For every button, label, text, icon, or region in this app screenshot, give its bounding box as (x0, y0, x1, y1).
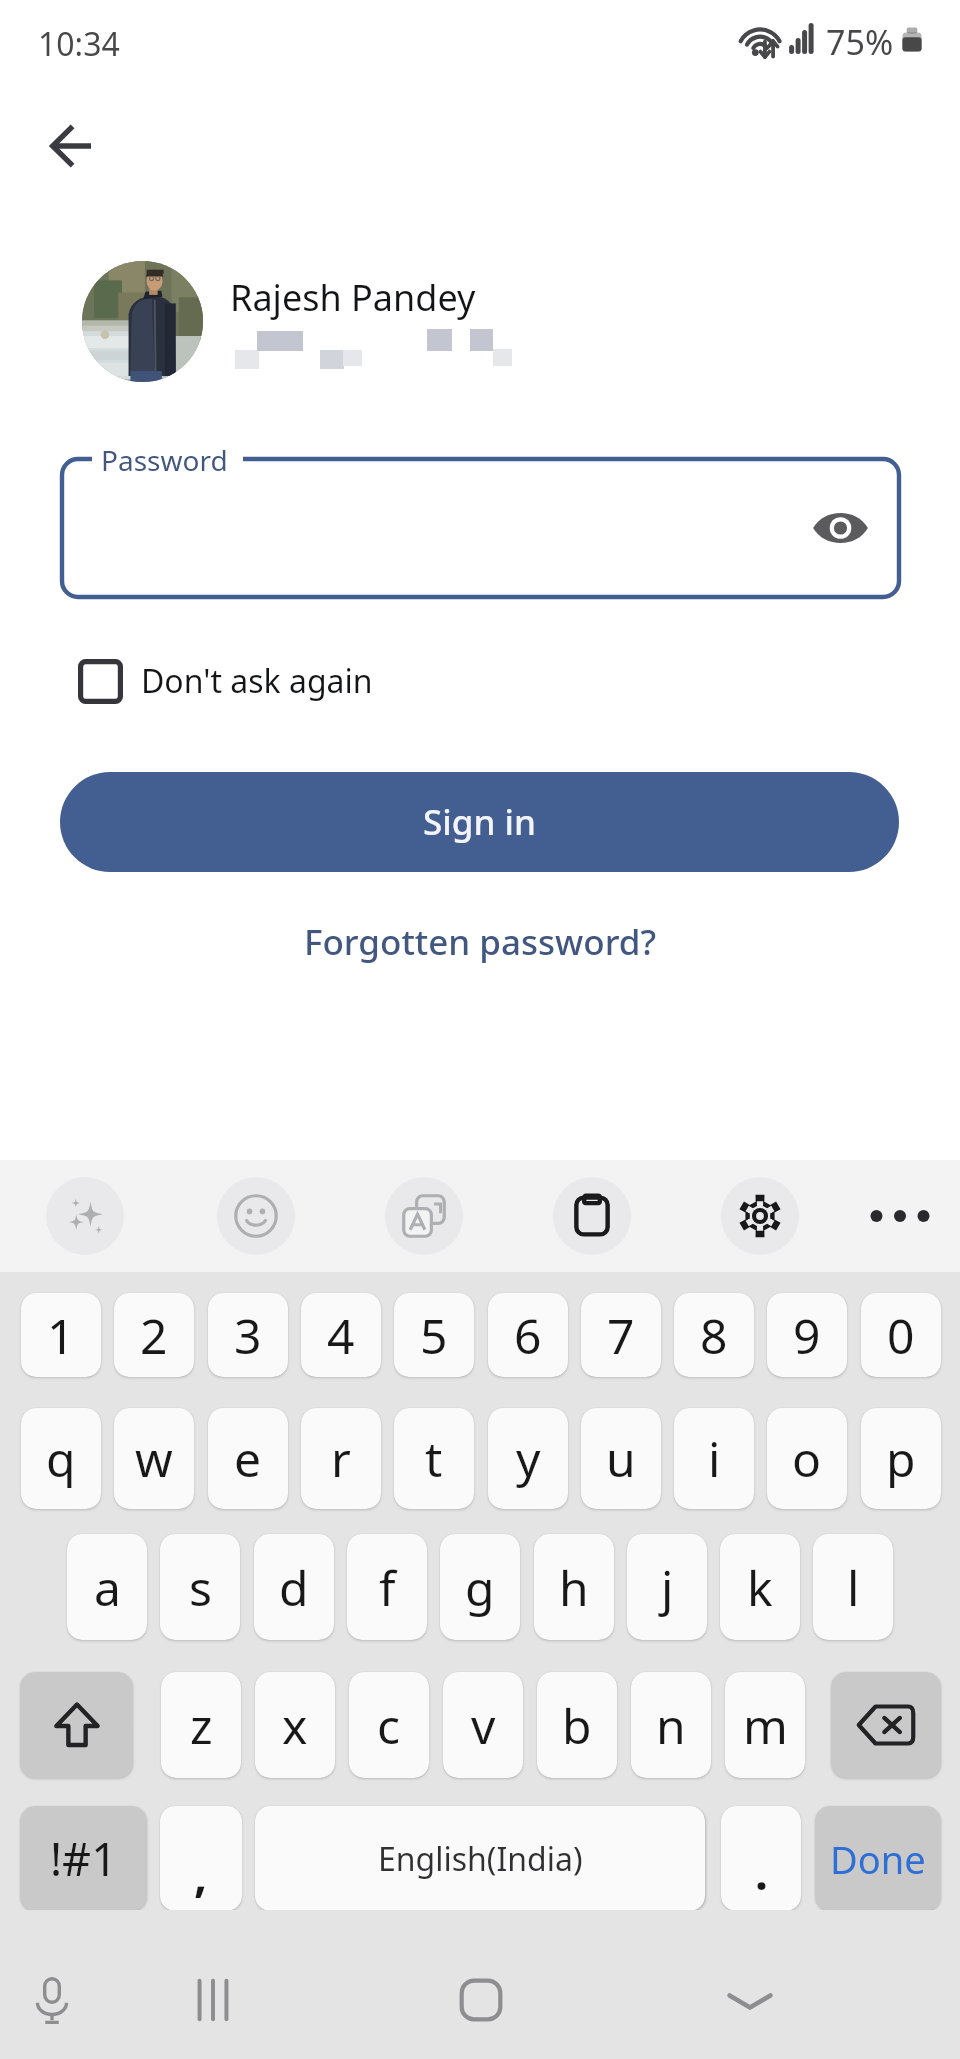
staticText: 2 (140, 1303, 168, 1368)
staticText: i (708, 1426, 721, 1491)
staticText: h (559, 1555, 589, 1620)
button[interactable]: w (114, 1408, 194, 1509)
staticText: 5 (420, 1303, 448, 1368)
button[interactable]: x (255, 1672, 335, 1778)
staticText: x (282, 1693, 308, 1758)
button[interactable]: . (721, 1806, 801, 1911)
staticText: y (516, 1426, 541, 1491)
staticText: u (606, 1426, 636, 1491)
staticText: 4 (327, 1303, 355, 1368)
button[interactable]: u (581, 1408, 661, 1509)
staticText: s (189, 1555, 212, 1620)
staticText: 1 (47, 1303, 75, 1368)
staticText: l (847, 1555, 860, 1620)
staticText: k (747, 1555, 773, 1620)
staticText: English(India) (378, 1837, 583, 1881)
button[interactable]: Backspace (831, 1672, 941, 1778)
button[interactable]: 2 (114, 1293, 194, 1377)
staticText: Rajesh Pandey (230, 273, 476, 322)
button[interactable]: , (160, 1806, 242, 1911)
button[interactable]: 3 (208, 1293, 288, 1377)
button[interactable]: Hide keyboard (710, 1960, 790, 2040)
staticText: p (886, 1426, 916, 1491)
button[interactable]: More options (861, 1177, 939, 1255)
button[interactable]: Settings (721, 1177, 799, 1255)
button[interactable]: h (534, 1534, 614, 1640)
button[interactable]: n (631, 1672, 711, 1778)
button[interactable]: Home (441, 1960, 521, 2040)
staticText: b (562, 1693, 592, 1758)
staticText: m (743, 1693, 788, 1758)
staticText: 8 (700, 1303, 728, 1368)
button[interactable]: 6 (488, 1293, 568, 1377)
button[interactable]: q (21, 1408, 101, 1509)
staticText: a (94, 1555, 121, 1620)
button[interactable]: 4 (301, 1293, 381, 1377)
button[interactable]: f (347, 1534, 427, 1640)
button[interactable]: r (301, 1408, 381, 1509)
button[interactable]: d (254, 1534, 334, 1640)
button[interactable]: Done (815, 1806, 941, 1911)
button[interactable]: t (394, 1408, 474, 1509)
staticText: w (135, 1426, 173, 1491)
button[interactable]: Forgotten password? (284, 906, 677, 978)
button[interactable]: y (488, 1408, 568, 1509)
button[interactable]: 0 (861, 1293, 941, 1377)
button[interactable]: c (349, 1672, 429, 1778)
button[interactable]: s (160, 1534, 240, 1640)
staticText: 75% (826, 19, 894, 65)
staticText: d (279, 1555, 309, 1620)
button[interactable]: Suggestions (46, 1177, 124, 1255)
button[interactable]: Recent apps (173, 1960, 253, 2040)
staticText: r (331, 1426, 351, 1491)
staticText: Don't ask again (141, 659, 373, 703)
staticText: 0 (887, 1303, 915, 1368)
button[interactable]: 9 (767, 1293, 847, 1377)
staticText: o (792, 1426, 822, 1491)
button[interactable]: Don't ask again (62, 645, 389, 717)
button[interactable]: o (767, 1408, 847, 1509)
staticText: e (234, 1426, 262, 1491)
button[interactable]: 1 (21, 1293, 101, 1377)
staticText: . (755, 1841, 768, 1904)
staticText: c (377, 1693, 401, 1758)
staticText: 3 (234, 1303, 262, 1368)
button[interactable]: Show password (800, 488, 880, 568)
staticText: Password (101, 441, 228, 479)
button[interactable]: 7 (581, 1293, 661, 1377)
button[interactable]: 8 (674, 1293, 754, 1377)
staticText: 7 (607, 1303, 635, 1368)
staticText: 10:34 (38, 22, 120, 66)
staticText: v (471, 1693, 496, 1758)
button[interactable]: English(India) (255, 1806, 705, 1911)
button[interactable]: a (67, 1534, 147, 1640)
staticText: , (194, 1843, 208, 1906)
button[interactable]: e (208, 1408, 288, 1509)
button[interactable]: l (813, 1534, 893, 1640)
button[interactable]: Emoji (217, 1177, 295, 1255)
button[interactable]: b (537, 1672, 617, 1778)
staticText: q (46, 1426, 76, 1491)
button[interactable]: 5 (394, 1293, 474, 1377)
staticText: j (661, 1555, 674, 1620)
button[interactable]: Shift (20, 1672, 133, 1778)
button[interactable]: Translate (385, 1177, 463, 1255)
staticText: f (379, 1555, 396, 1620)
button[interactable]: Back (22, 98, 118, 194)
button[interactable]: v (443, 1672, 523, 1778)
staticText: g (465, 1555, 495, 1620)
button[interactable]: m (725, 1672, 805, 1778)
button[interactable]: z (161, 1672, 241, 1778)
button[interactable]: k (720, 1534, 800, 1640)
button[interactable]: g (440, 1534, 520, 1640)
button[interactable]: !#1 (20, 1806, 147, 1911)
staticText: n (656, 1693, 686, 1758)
button[interactable]: i (674, 1408, 754, 1509)
button[interactable]: j (627, 1534, 707, 1640)
staticText: !#1 (50, 1828, 117, 1889)
button[interactable]: Clipboard (553, 1177, 631, 1255)
button[interactable]: Voice input (12, 1960, 92, 2040)
button[interactable]: p (861, 1408, 941, 1509)
button[interactable]: Sign in (60, 772, 899, 872)
staticText: t (425, 1426, 443, 1491)
